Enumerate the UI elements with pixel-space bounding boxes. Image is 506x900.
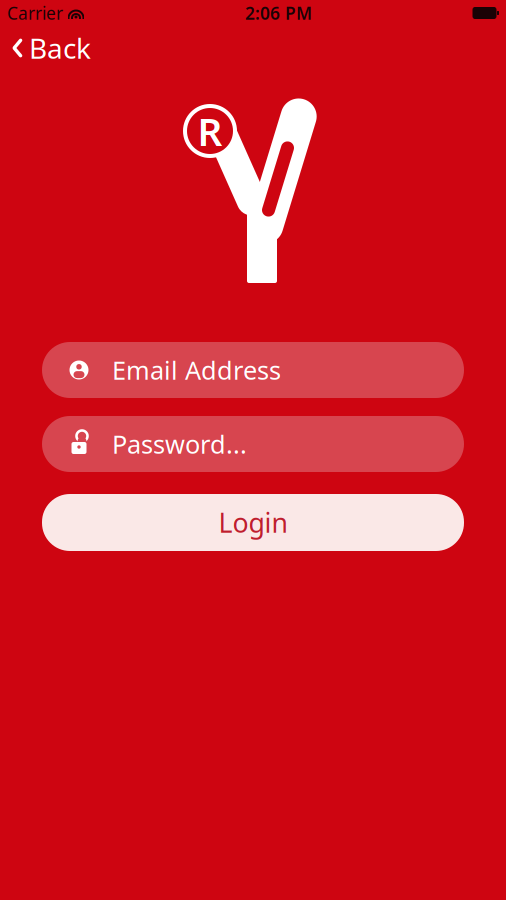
button[interactable]: Email Address [42,342,464,398]
staticText: R [197,105,222,157]
button[interactable]: Back [0,27,103,69]
staticText: Password... [112,427,247,461]
staticText: Login [218,505,287,540]
button[interactable]: Login [42,494,464,551]
staticText: Email Address [112,353,281,387]
staticText: 2:06 PM [245,1,312,24]
staticText: Back [29,29,91,67]
button[interactable]: Password... [42,416,464,472]
staticText: Carrier [7,1,63,24]
